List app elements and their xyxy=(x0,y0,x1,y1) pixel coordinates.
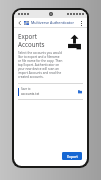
button[interactable]: Back xyxy=(17,20,23,26)
button[interactable]: More options xyxy=(78,20,84,26)
staticText: Select the accounts you would like to ex… xyxy=(18,51,63,79)
staticText: Export xyxy=(67,154,78,159)
button[interactable]: Export xyxy=(62,152,82,160)
button[interactable]: Browse folder xyxy=(77,89,83,95)
staticText: Export Accounts xyxy=(18,32,63,48)
button[interactable]: Save to xyxy=(18,87,83,96)
staticText: Multiverse Authenticator xyxy=(31,20,74,25)
staticText: accounts.txt xyxy=(21,92,40,96)
staticText: Save to xyxy=(21,87,31,91)
